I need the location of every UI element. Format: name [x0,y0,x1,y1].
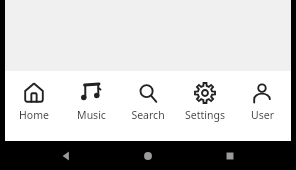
staticText: Music [77,108,106,122]
staticText: Search [131,108,165,122]
button[interactable]: Music [63,71,119,141]
button[interactable]: Home [127,142,169,170]
staticText: User [251,108,274,122]
staticText: Settings [185,108,225,122]
button[interactable]: Recent apps [209,142,251,170]
button[interactable]: Settings [177,71,233,141]
button[interactable]: User [234,71,290,141]
staticText: Home [19,108,49,122]
button[interactable]: Back [45,142,87,170]
button[interactable]: Home [6,71,62,141]
button[interactable]: Search [120,71,176,141]
